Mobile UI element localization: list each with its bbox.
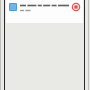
button[interactable]: App icon bbox=[6, 0, 83, 23]
other: App icon bbox=[9, 3, 17, 11]
button[interactable]: Alert bbox=[72, 3, 80, 11]
